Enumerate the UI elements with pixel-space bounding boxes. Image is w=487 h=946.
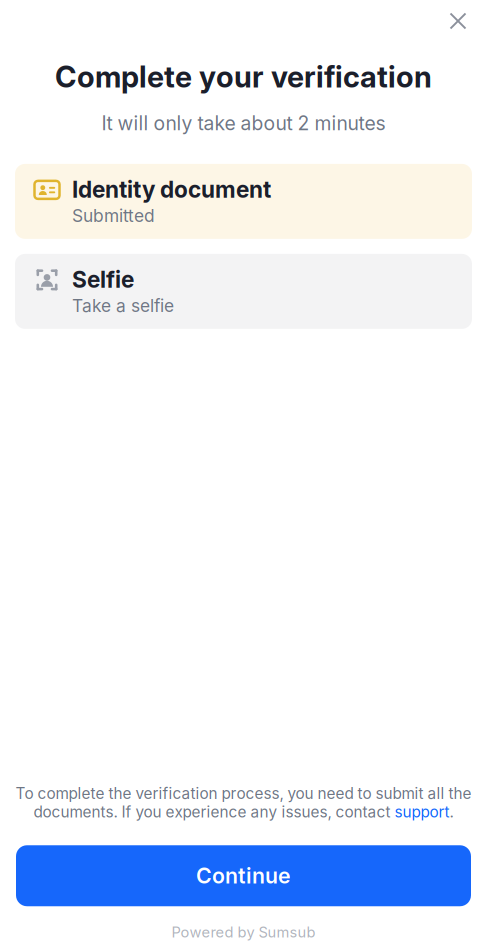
button[interactable]: support: [394, 803, 449, 821]
button[interactable]: Close: [438, 1, 478, 41]
staticText: Complete your verification: [55, 59, 432, 94]
staticText: .: [449, 803, 453, 821]
button[interactable]: Identity document: [15, 164, 472, 239]
button[interactable]: Continue: [16, 845, 471, 906]
staticText: Submitted: [72, 205, 155, 226]
button[interactable]: Selfie: [15, 254, 472, 329]
staticText: documents. If you experience any issues,…: [33, 803, 394, 821]
staticText: support: [394, 803, 449, 821]
staticText: Powered by Sumsub: [171, 923, 315, 941]
staticText: Take a selfie: [72, 295, 174, 316]
staticText: To complete the verification process, yo…: [15, 784, 471, 803]
staticText: Continue: [196, 863, 291, 889]
staticText: Identity document: [72, 176, 271, 203]
staticText: Selfie: [72, 266, 134, 293]
staticText: It will only take about 2 minutes: [101, 111, 385, 135]
